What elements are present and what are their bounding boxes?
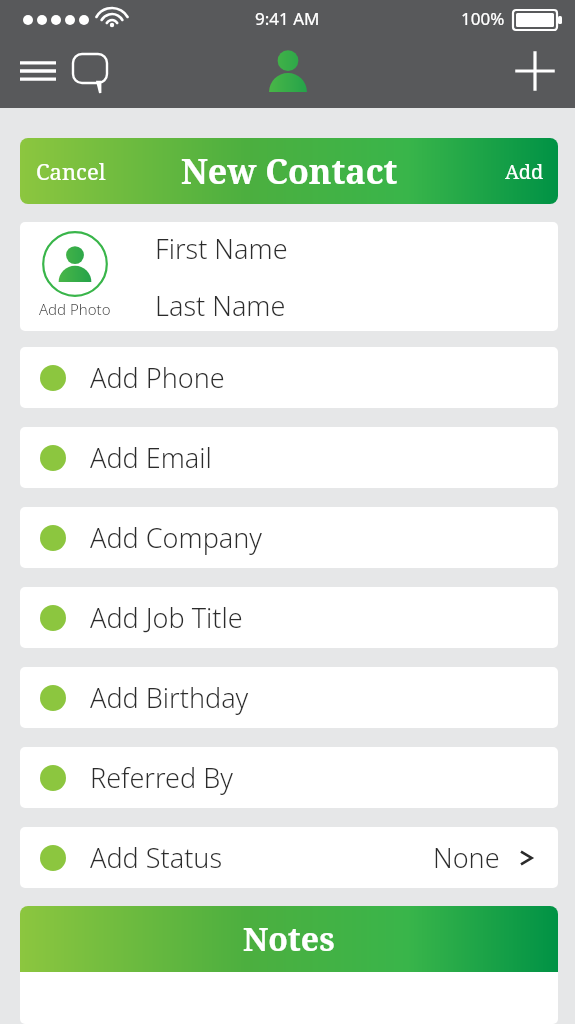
staticText: 9:41 AM	[255, 7, 320, 30]
button[interactable]: Add	[499, 152, 550, 191]
button[interactable]: Messages	[66, 47, 114, 95]
staticText: Add Status	[90, 839, 223, 876]
button[interactable]: Referred By	[20, 747, 558, 808]
button[interactable]: Add Birthday	[20, 667, 558, 728]
staticText: New Contact	[181, 148, 398, 194]
staticText: Cancel	[36, 156, 106, 186]
button[interactable]: Add Photo	[35, 231, 115, 319]
staticText: 100%	[461, 7, 505, 30]
button[interactable]: Add Email	[20, 427, 558, 488]
button[interactable]: First Name	[155, 227, 288, 270]
staticText: Add	[505, 158, 544, 185]
staticText: Last Name	[155, 287, 286, 324]
staticText: Referred By	[90, 759, 233, 796]
button[interactable]: Add Phone	[20, 347, 558, 408]
button[interactable]: Add Status	[20, 827, 558, 888]
button[interactable]: Add Company	[20, 507, 558, 568]
staticText: Add Company	[90, 519, 263, 556]
staticText: Notes	[243, 917, 335, 961]
button[interactable]: Menu	[14, 47, 62, 95]
button[interactable]: Add Job Title	[20, 587, 558, 648]
staticText: Add Photo	[39, 299, 111, 319]
button[interactable]: Cancel	[30, 150, 112, 192]
button[interactable]: Add	[509, 45, 561, 97]
staticText: Add Birthday	[90, 679, 249, 716]
button[interactable]: Profile	[262, 45, 314, 97]
staticText: None	[433, 839, 500, 876]
staticText: Add Email	[90, 439, 212, 476]
staticText: First Name	[155, 230, 288, 267]
staticText: Add Phone	[90, 359, 225, 396]
staticText: Add Job Title	[90, 599, 243, 636]
button[interactable]: Notes	[20, 906, 558, 972]
button[interactable]: Last Name	[155, 284, 286, 327]
